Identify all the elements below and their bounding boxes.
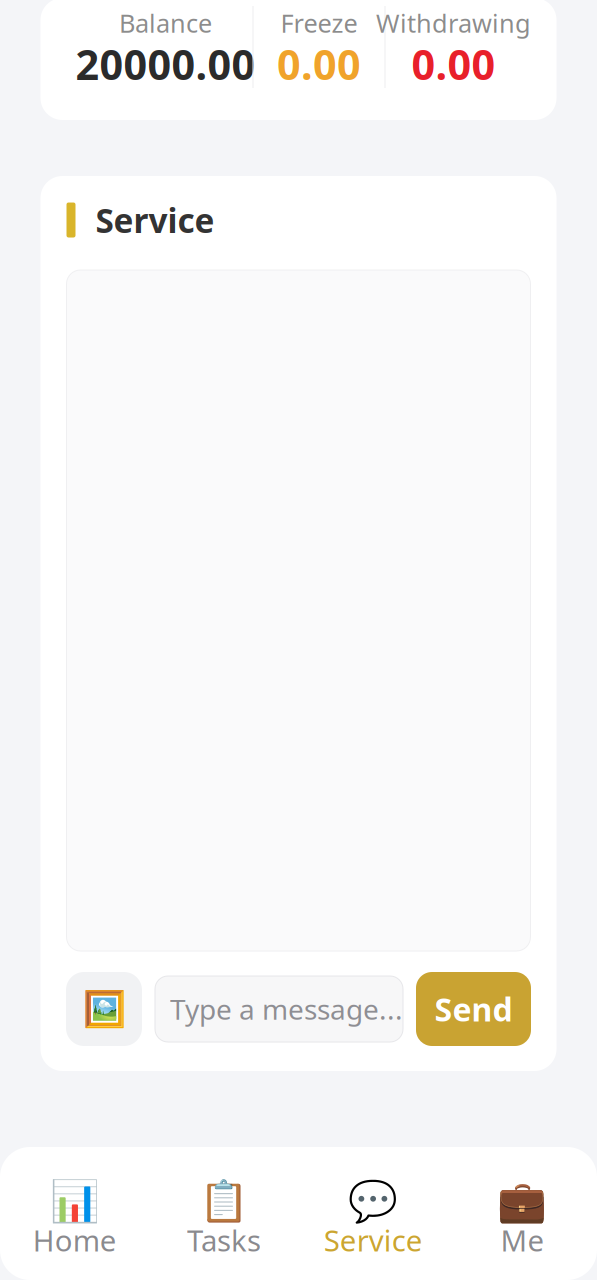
staticText: Home	[33, 1220, 117, 1259]
staticText: 20000.00	[75, 37, 255, 91]
staticText: Tasks	[187, 1220, 261, 1259]
staticText: Service	[324, 1220, 423, 1259]
button[interactable]: 📋	[149, 1147, 298, 1280]
staticText: 0.00	[411, 37, 495, 91]
staticText: Send	[434, 988, 512, 1030]
staticText: Freeze	[280, 6, 357, 40]
staticText: 💬	[348, 1178, 398, 1224]
staticText: 📋	[199, 1178, 249, 1224]
button[interactable]: 💬	[298, 1147, 448, 1280]
staticText: 📊	[50, 1178, 100, 1224]
staticText: Balance	[119, 6, 212, 40]
staticText: Service	[95, 198, 214, 242]
button[interactable]: 💼	[448, 1147, 597, 1280]
staticText: 💼	[497, 1178, 547, 1224]
staticText: 🖼️	[82, 989, 125, 1029]
button[interactable]: Attach image	[66, 972, 142, 1046]
staticText: Type a message...	[170, 990, 403, 1028]
button[interactable]: Send	[416, 972, 531, 1046]
staticText: 0.00	[277, 37, 361, 91]
button[interactable]: 📊	[0, 1147, 149, 1280]
staticText: Me	[500, 1220, 544, 1259]
staticText: Withdrawing	[376, 6, 531, 40]
